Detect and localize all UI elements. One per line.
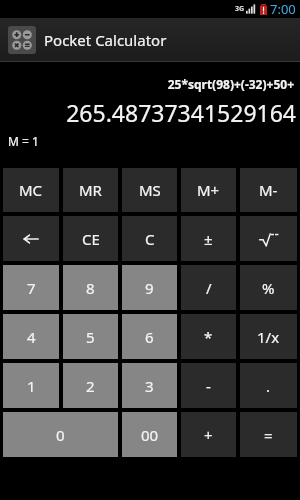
- button[interactable]: 8: [63, 265, 118, 310]
- staticText: *: [204, 327, 213, 347]
- button[interactable]: 1: [3, 363, 59, 408]
- button[interactable]: ±: [181, 216, 236, 261]
- staticText: C: [145, 229, 155, 249]
- button[interactable]: .: [240, 363, 297, 408]
- staticText: +: [204, 425, 213, 445]
- staticText: 6: [145, 327, 154, 347]
- button[interactable]: 9: [122, 265, 177, 310]
- staticText: 1: [27, 376, 36, 396]
- staticText: %: [262, 278, 275, 298]
- staticText: MR: [79, 180, 102, 200]
- staticText: .: [266, 376, 271, 396]
- staticText: CE: [82, 229, 100, 249]
- button[interactable]: M+: [181, 168, 236, 212]
- button[interactable]: 3: [122, 363, 177, 408]
- button[interactable]: /: [181, 265, 236, 310]
- staticText: 0: [56, 425, 65, 445]
- button[interactable]: *: [181, 314, 236, 359]
- button[interactable]: 00: [122, 412, 177, 457]
- button[interactable]: +: [181, 412, 236, 457]
- button[interactable]: MR: [63, 168, 118, 212]
- staticText: MS: [139, 180, 161, 200]
- staticText: 3G: [235, 4, 245, 14]
- button[interactable]: 6: [122, 314, 177, 359]
- staticText: =: [264, 425, 273, 445]
- button[interactable]: 1/x: [240, 314, 297, 359]
- staticText: 1/x: [257, 327, 280, 347]
- button[interactable]: Square root: [240, 216, 297, 261]
- staticText: 7:00: [270, 0, 296, 18]
- button[interactable]: CE: [63, 216, 118, 261]
- staticText: 8: [86, 278, 95, 298]
- staticText: Pocket Calculator: [44, 30, 167, 50]
- button[interactable]: Backspace: [3, 216, 59, 261]
- staticText: 5: [86, 327, 95, 347]
- staticText: MC: [19, 180, 43, 200]
- button[interactable]: 4: [3, 314, 59, 359]
- button[interactable]: 2: [63, 363, 118, 408]
- staticText: 265.48737341529164: [0, 97, 296, 128]
- button[interactable]: 0: [3, 412, 118, 457]
- staticText: 4: [27, 327, 36, 347]
- staticText: ±: [204, 229, 213, 249]
- staticText: 25*sqrt(98)+(-32)+50+: [0, 76, 294, 92]
- button[interactable]: M-: [240, 168, 297, 212]
- staticText: 3: [145, 376, 154, 396]
- button[interactable]: C: [122, 216, 177, 261]
- staticText: 00: [141, 425, 159, 445]
- staticText: /: [206, 278, 212, 298]
- button[interactable]: MC: [3, 168, 59, 212]
- staticText: 7: [27, 278, 36, 298]
- button[interactable]: 7: [3, 265, 59, 310]
- staticText: M = 1: [8, 133, 39, 149]
- button[interactable]: -: [181, 363, 236, 408]
- button[interactable]: MS: [122, 168, 177, 212]
- staticText: M-: [259, 180, 278, 200]
- button[interactable]: 5: [63, 314, 118, 359]
- staticText: 9: [145, 278, 154, 298]
- staticText: 2: [86, 376, 95, 396]
- staticText: M+: [197, 180, 220, 200]
- button[interactable]: %: [240, 265, 297, 310]
- staticText: -: [206, 376, 211, 396]
- button[interactable]: =: [240, 412, 297, 457]
